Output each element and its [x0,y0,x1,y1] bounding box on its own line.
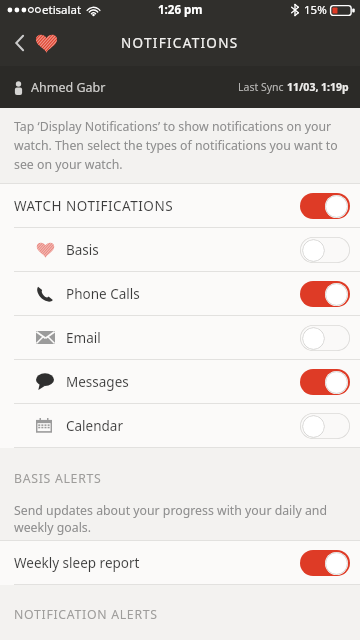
button[interactable]: Off [300,325,350,351]
staticText: Send updates about your progress with yo… [14,502,346,536]
staticText: Email [66,329,300,347]
button[interactable]: On [300,369,350,395]
staticText: Last Sync [238,80,287,94]
staticText: Calendar [66,417,300,435]
button[interactable]: Basis [0,228,360,271]
staticText: Basis [66,241,300,259]
staticText: NOTIFICATIONS [121,34,239,52]
button[interactable]: Messages [0,360,360,403]
staticText: BASIS ALERTS [14,470,102,487]
button[interactable]: Off [300,413,350,439]
staticText: Ahmed Gabr [31,79,106,96]
button[interactable]: WATCH NOTIFICATIONS [0,184,360,227]
button[interactable]: Back [0,20,70,66]
button[interactable]: Calendar [0,404,360,447]
button[interactable]: Weekly sleep report [0,541,360,584]
staticText: etisalat [42,2,82,18]
staticText: Phone Calls [66,285,300,303]
staticText: Weekly sleep report [14,554,300,572]
button[interactable]: Off [300,237,350,263]
button[interactable]: Phone Calls [0,272,360,315]
staticText: 15% [304,2,327,18]
staticText: Tap ‘Display Notifications’ to show noti… [14,118,346,173]
staticText: WATCH NOTIFICATIONS [14,197,300,215]
button[interactable]: On [300,550,350,576]
staticText: 11/03, 1:19p [287,80,349,94]
staticText: 1:26 pm [158,2,203,18]
button[interactable]: On [300,193,350,219]
staticText: NOTIFICATION ALERTS [14,606,158,623]
button[interactable]: On [300,281,350,307]
button[interactable]: Email [0,316,360,359]
staticText: Messages [66,373,300,391]
